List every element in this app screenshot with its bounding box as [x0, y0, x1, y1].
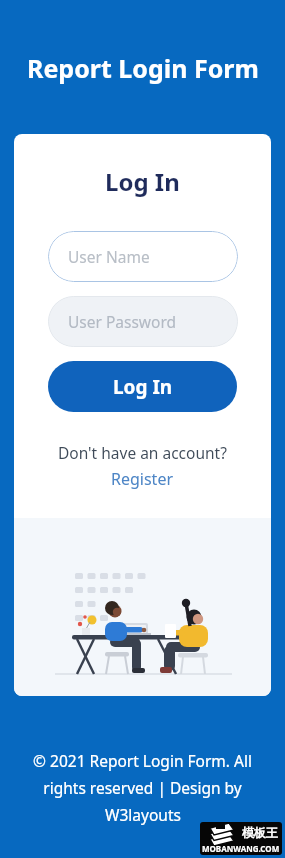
staticText: rights reserved | Design by — [43, 777, 242, 798]
button[interactable]: Register — [111, 468, 174, 490]
staticText: Report Login Form — [27, 51, 259, 85]
staticText: User Name — [68, 246, 150, 267]
staticText: User Password — [68, 311, 177, 332]
staticText: MOBANWANG.COM — [202, 843, 280, 854]
button[interactable]: User Name — [48, 231, 238, 282]
staticText: Don't have an account? — [58, 442, 227, 463]
button[interactable]: Log In — [48, 361, 237, 412]
staticText: 模板王 — [242, 825, 278, 840]
staticText: Log In — [113, 374, 173, 400]
button[interactable]: W3layouts — [105, 804, 181, 825]
button[interactable]: User Password — [48, 296, 238, 347]
staticText: Log In — [105, 165, 180, 198]
button[interactable]: 模板王 — [200, 822, 282, 855]
staticText: © 2021 Report Login Form. All — [33, 750, 252, 771]
